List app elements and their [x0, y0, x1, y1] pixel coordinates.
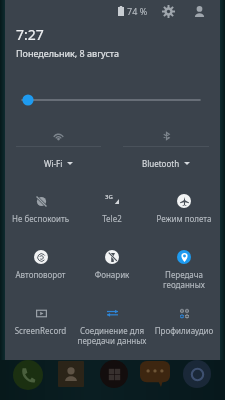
button[interactable]: Соединение для передачи данных [76, 298, 148, 346]
button[interactable]: Профилиаудио [148, 298, 220, 336]
staticText: 7:27 [16, 25, 44, 44]
button[interactable]: User profile [192, 4, 207, 19]
button[interactable]: Передача геоданных [148, 242, 220, 290]
staticText: Понедельник, 8 августа [16, 47, 120, 59]
button[interactable]: Brightness [5, 88, 220, 112]
button[interactable]: Wi-Fi [5, 122, 112, 170]
staticText: 3G [105, 193, 113, 201]
button[interactable]: Phone [13, 360, 43, 390]
button[interactable]: Bluetooth [112, 122, 220, 170]
staticText: Фонарик [76, 269, 148, 280]
staticText: Не беспокоить [5, 213, 76, 224]
button[interactable]: Не беспокоить [5, 186, 76, 224]
staticText: Соединение для передачи данных [76, 325, 148, 346]
staticText: Tele2 [76, 213, 148, 224]
button[interactable]: Settings [161, 4, 176, 19]
button[interactable]: Режим полета [148, 186, 220, 224]
button[interactable]: Apps [100, 360, 128, 388]
button[interactable]: Messages [140, 361, 170, 387]
button[interactable]: Фонарик [76, 242, 148, 280]
staticText: Передача геоданных [148, 269, 220, 290]
staticText: Профилиаудио [148, 325, 220, 336]
button[interactable]: Автоповорот [5, 242, 76, 280]
button[interactable]: Contacts [58, 361, 84, 387]
staticText: Wi-Fi [44, 158, 63, 169]
button[interactable]: 3G [76, 186, 148, 224]
button[interactable]: ScreenRecord [5, 298, 76, 336]
staticText: ScreenRecord [5, 325, 76, 336]
staticText: 74 % [127, 5, 148, 17]
staticText: Режим полета [148, 213, 220, 224]
staticText: Автоповорот [5, 269, 76, 280]
button[interactable]: Browser [183, 360, 211, 388]
staticText: Bluetooth [142, 158, 180, 169]
